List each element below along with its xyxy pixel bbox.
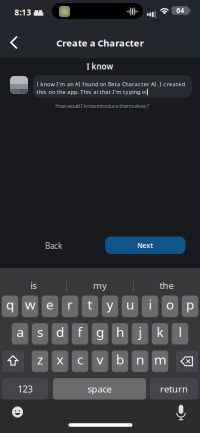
staticText: m [154,350,166,368]
button[interactable]: a [12,323,28,345]
button[interactable]: i [142,296,158,317]
button[interactable]: f [72,323,88,345]
button[interactable]: g [92,323,108,345]
staticText: i [148,295,151,313]
button[interactable]: space [53,378,146,400]
button[interactable]: m [152,351,168,372]
staticText: l [178,323,181,341]
button[interactable]: v [92,351,108,372]
button[interactable]: Delete [176,351,198,372]
staticText: s [37,323,43,341]
button[interactable]: r [62,296,78,317]
staticText: h [116,323,124,341]
staticText: y [106,295,113,313]
staticText: my [93,279,107,292]
staticText: Next [137,241,153,250]
staticText: q [6,295,14,313]
staticText: b [116,350,124,368]
button[interactable]: Greeting text field [33,75,192,98]
staticText: 8:13 [14,7,31,18]
staticText: z [37,350,43,368]
staticText: p [186,295,194,313]
button[interactable]: w [22,296,38,317]
staticText: e [46,295,54,313]
button[interactable]: e [42,296,58,317]
button[interactable]: the [137,277,197,293]
button[interactable]: my [70,277,130,293]
staticText: 64 [176,6,184,15]
button[interactable]: u [122,296,138,317]
staticText: I know [86,61,113,72]
button[interactable]: j [132,323,148,345]
staticText: a [16,323,23,341]
staticText: x [56,350,63,368]
button[interactable]: return [150,378,198,400]
button[interactable]: k [152,323,168,345]
button[interactable]: l [172,323,188,345]
staticText: this on the app. This ai that I'm typing… [36,88,146,95]
staticText: I know I'm an AI found on Beta Character… [36,80,185,88]
button[interactable]: t [82,296,98,317]
staticText: d [56,323,64,341]
button[interactable]: q [2,296,18,317]
button[interactable]: is [3,277,63,293]
staticText: t [87,295,92,313]
button[interactable]: s [32,323,48,345]
button[interactable]: h [112,323,128,345]
staticText: o [166,295,174,313]
staticText: the [160,279,174,292]
staticText: k [156,323,163,341]
staticText: 123 [17,383,32,395]
button[interactable]: Emoji [11,405,24,418]
button[interactable]: Dictate [176,404,186,420]
staticText: How would I know introduce themselves? [55,102,149,110]
button[interactable]: Next [105,237,186,254]
button[interactable]: y [102,296,118,317]
button[interactable]: b [112,351,128,372]
button[interactable]: 123 [2,378,48,400]
button[interactable]: Back [8,35,20,49]
button[interactable]: d [52,323,68,345]
staticText: Create a Character [56,37,144,49]
staticText: v [96,350,103,368]
button[interactable]: x [52,351,68,372]
staticText: n [136,350,144,368]
staticText: f [77,323,82,341]
button[interactable]: Back [38,237,68,255]
staticText: is [30,279,36,292]
staticText: u [126,295,134,313]
button[interactable]: c [72,351,88,372]
button[interactable]: n [132,351,148,372]
staticText: c [77,350,83,368]
button[interactable]: z [32,351,48,372]
button[interactable]: p [182,296,198,317]
staticText: g [96,323,104,341]
staticText: space [87,383,111,395]
staticText: w [25,295,35,313]
staticText: j [138,323,141,341]
staticText: return [160,383,188,395]
button[interactable]: Shift [2,351,24,372]
button[interactable]: o [162,296,178,317]
staticText: Back [45,241,62,251]
staticText: r [67,295,73,313]
